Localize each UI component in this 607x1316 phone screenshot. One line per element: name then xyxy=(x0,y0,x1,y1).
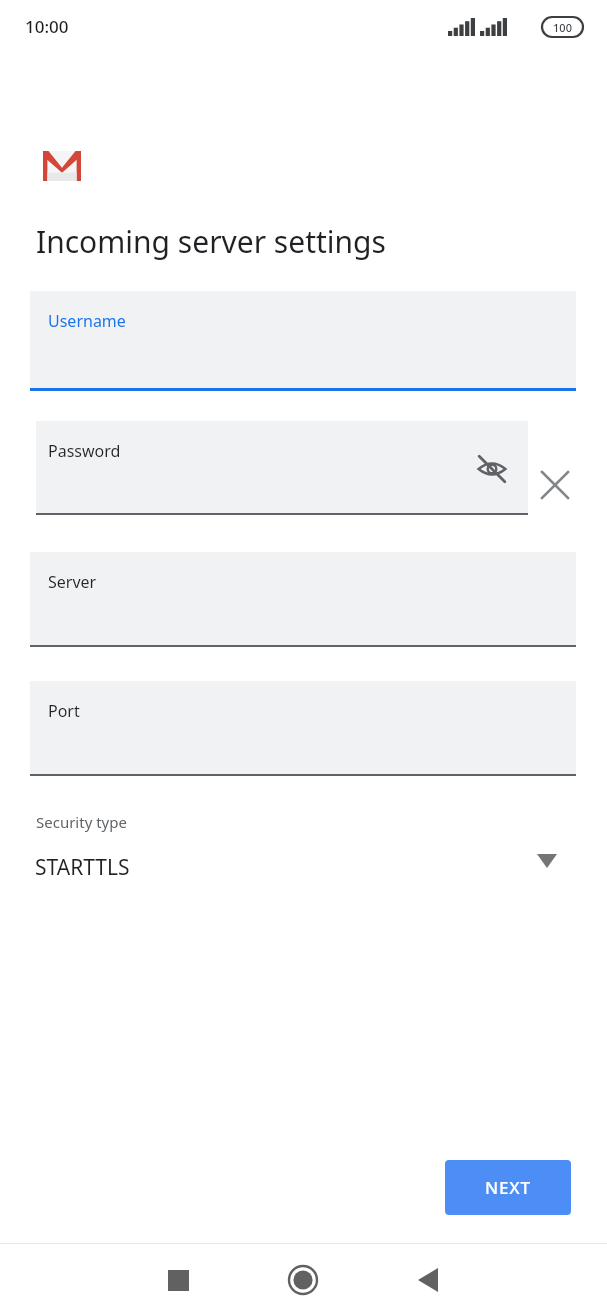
button[interactable]: Recent apps xyxy=(143,1245,213,1315)
staticText: Server xyxy=(48,571,97,593)
button[interactable]: Username xyxy=(30,291,576,391)
button[interactable]: Back xyxy=(393,1245,463,1315)
button[interactable]: Clear password xyxy=(533,463,577,507)
staticText: Security type xyxy=(36,812,127,832)
button[interactable]: NEXT xyxy=(445,1160,571,1215)
button[interactable]: Port xyxy=(30,681,576,776)
button[interactable]: Hide password xyxy=(470,447,514,491)
staticText: 10:00 xyxy=(25,15,69,38)
staticText: Username xyxy=(48,310,126,332)
staticText: 100 xyxy=(553,20,572,35)
staticText: Password xyxy=(48,440,121,462)
button[interactable]: Password xyxy=(36,421,528,515)
staticText: STARTTLS xyxy=(35,853,130,882)
staticText: Port xyxy=(48,700,80,722)
button[interactable]: Server xyxy=(30,552,576,647)
staticText: Incoming server settings xyxy=(36,221,386,262)
button[interactable]: Home xyxy=(268,1245,338,1315)
button[interactable]: Security type xyxy=(30,805,576,897)
staticText: NEXT xyxy=(485,1176,531,1199)
